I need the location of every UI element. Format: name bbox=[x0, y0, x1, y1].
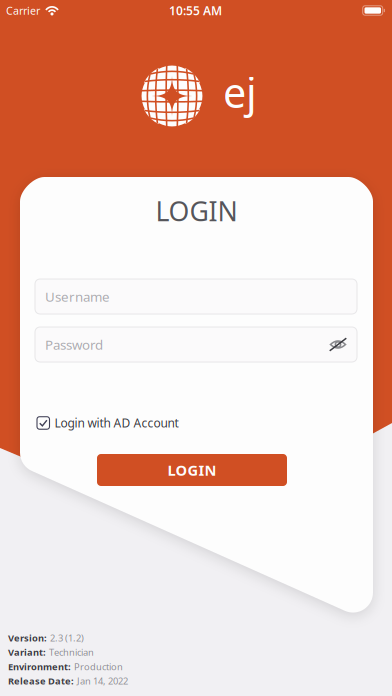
staticText: 10:55 AM bbox=[169, 2, 222, 18]
staticText: Release Date: bbox=[8, 675, 74, 687]
staticText: Username bbox=[45, 288, 110, 305]
staticText: ej bbox=[223, 65, 257, 119]
staticText: Production bbox=[74, 660, 123, 673]
staticText: Carrier bbox=[6, 3, 40, 18]
button[interactable]: Login with AD Account bbox=[35, 412, 180, 434]
staticText: Technician bbox=[49, 646, 94, 658]
staticText: Version: bbox=[8, 632, 47, 644]
staticText: Password bbox=[45, 336, 103, 353]
staticText: LOGIN bbox=[167, 460, 216, 480]
staticText: 2.3 (1.2) bbox=[50, 632, 84, 644]
button[interactable]: Show password bbox=[325, 331, 351, 357]
staticText: Login with AD Account bbox=[54, 415, 178, 431]
staticText: Jan 14, 2022 bbox=[77, 675, 128, 687]
button[interactable]: LOGIN bbox=[97, 454, 287, 486]
staticText: LOGIN bbox=[155, 193, 237, 229]
staticText: Variant: bbox=[8, 646, 46, 658]
staticText: Environment: bbox=[8, 660, 71, 673]
